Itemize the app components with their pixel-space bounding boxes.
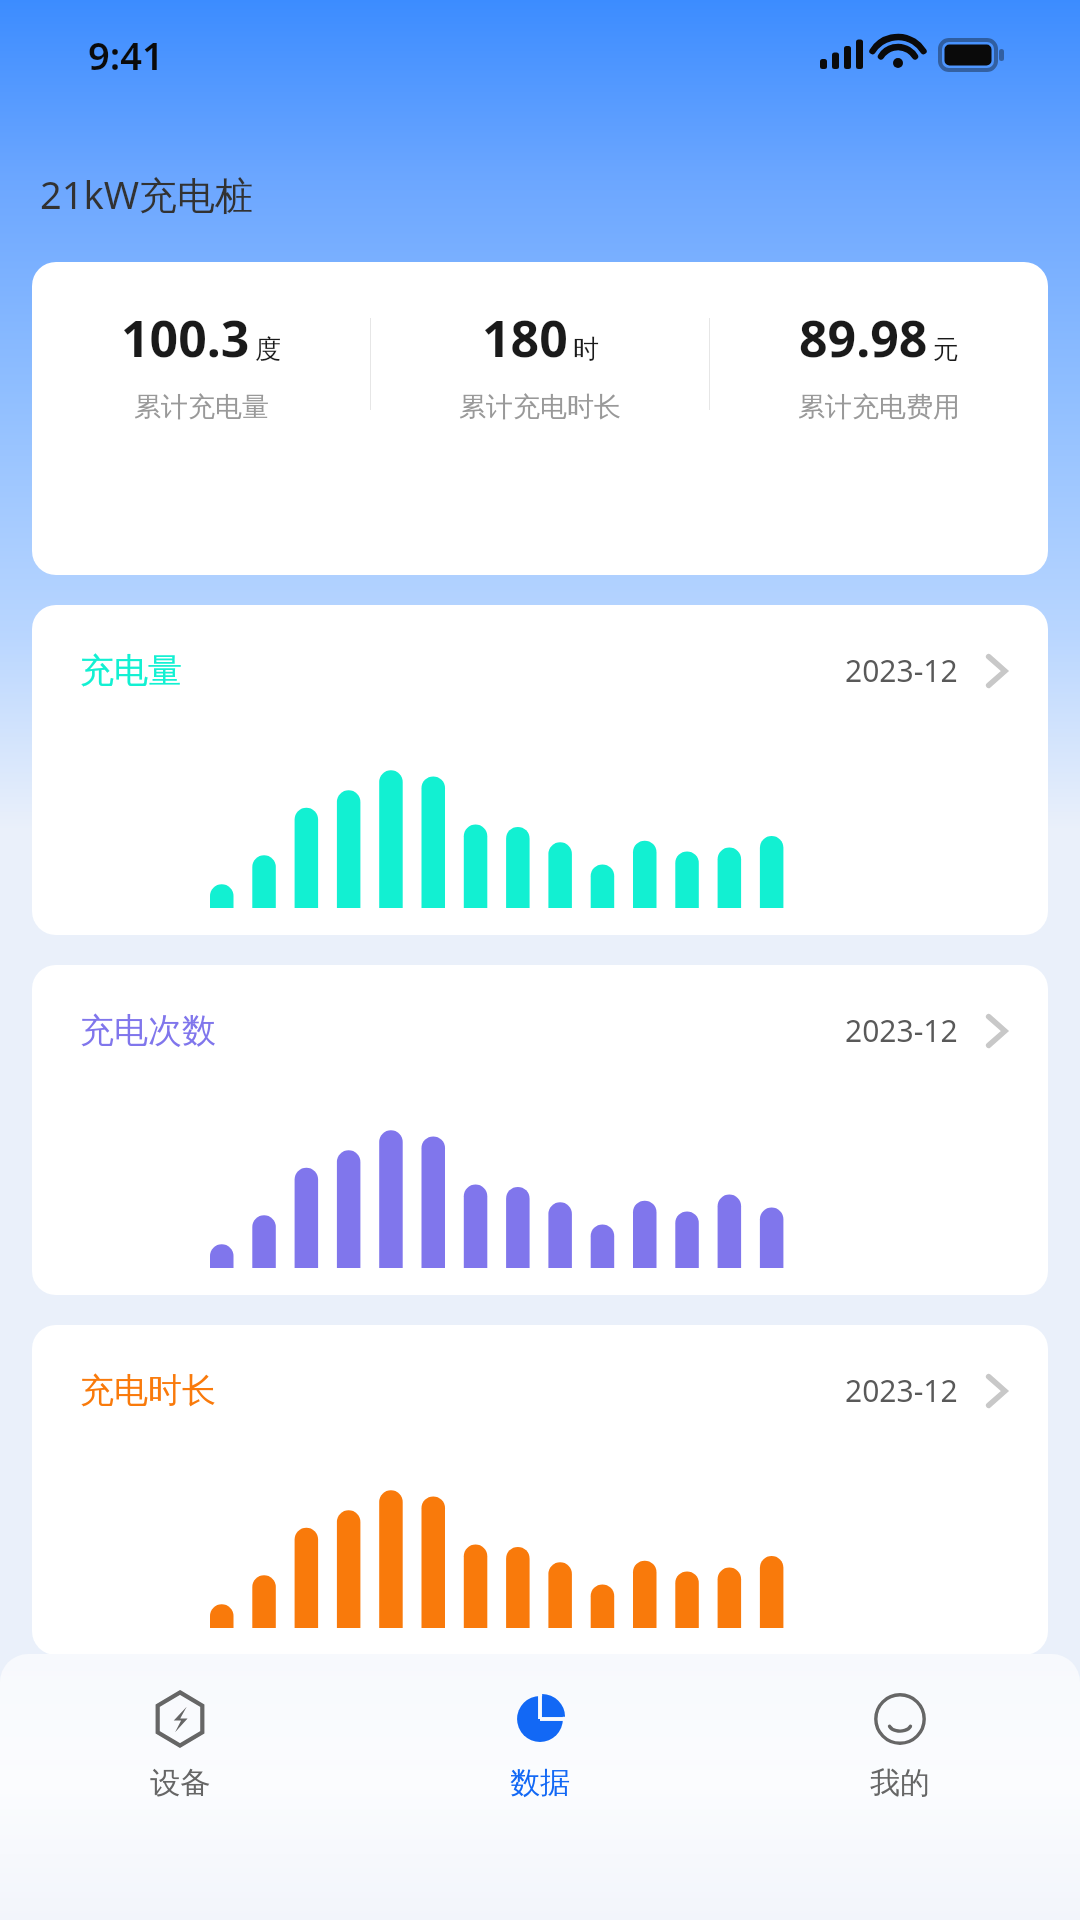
staticText: 度 [255, 333, 281, 366]
staticText: 充电次数 [80, 1009, 216, 1052]
button[interactable]: 100.3 [32, 262, 1048, 575]
staticText: 设备 [150, 1764, 210, 1802]
staticText: 充电时长 [80, 1369, 216, 1412]
staticText: 2023-12 [845, 1010, 958, 1051]
staticText: 100.3 [121, 304, 250, 372]
button[interactable]: 充电量 [32, 605, 1048, 935]
button[interactable]: 数据 [360, 1682, 720, 1808]
staticText: 充电量 [80, 649, 182, 692]
staticText: 180 [482, 304, 568, 372]
staticText: 数据 [510, 1764, 570, 1802]
staticText: 累计充电量 [134, 390, 269, 424]
staticText: 累计充电费用 [798, 390, 960, 424]
button[interactable]: 充电时长 [32, 1325, 1048, 1655]
button[interactable]: 充电次数 [32, 965, 1048, 1295]
staticText: 2023-12 [845, 1370, 958, 1411]
staticText: 21kW充电桩 [40, 168, 254, 220]
staticText: 9:41 [88, 29, 164, 81]
staticText: 89.98 [799, 304, 928, 372]
button[interactable]: 设备 [0, 1682, 360, 1808]
button[interactable]: 我的 [720, 1682, 1080, 1808]
staticText: 2023-12 [845, 650, 958, 691]
staticText: 我的 [870, 1764, 930, 1802]
staticText: 时 [573, 333, 599, 366]
staticText: 累计充电时长 [459, 390, 621, 424]
staticText: 元 [933, 333, 959, 366]
